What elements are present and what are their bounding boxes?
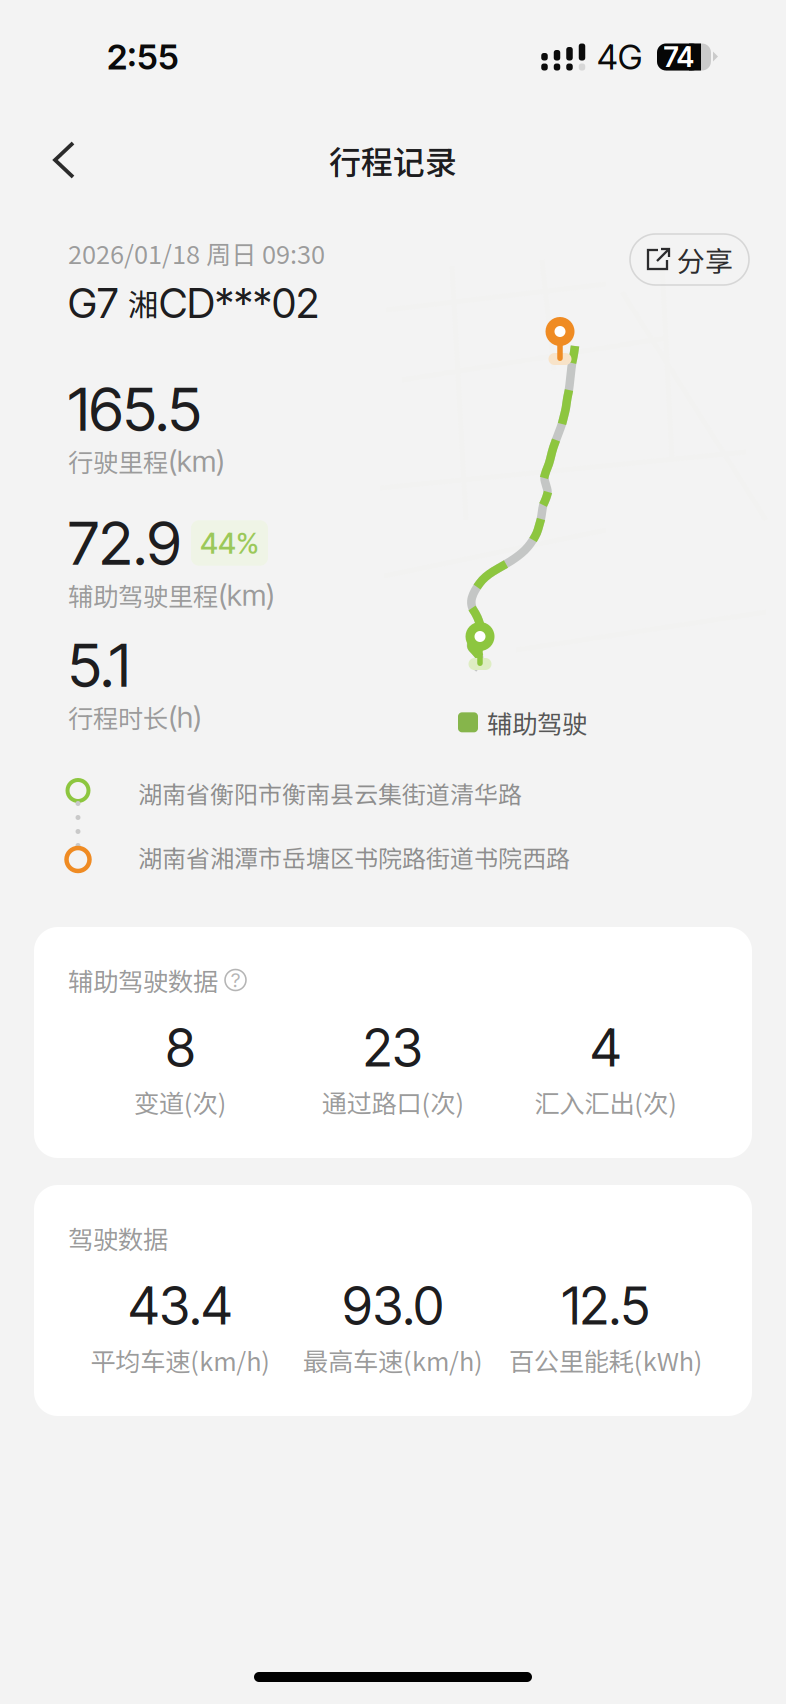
staticText: (km)	[168, 443, 225, 479]
staticText: (km)	[218, 577, 275, 613]
staticText: 辅助驾驶	[487, 704, 587, 741]
staticText: 汇入汇出(次)	[534, 1084, 677, 1120]
staticText: 湖南省衡阳市衡南县云集街道清华路	[138, 776, 522, 810]
staticText: 变道(次)	[134, 1084, 227, 1120]
staticText: 驾驶数据	[68, 1220, 168, 1256]
staticText: 44%	[200, 525, 259, 561]
staticText: 43.4	[128, 1274, 232, 1337]
staticText: 8	[166, 1016, 195, 1079]
staticText: 72.9	[68, 507, 181, 579]
staticText: 行驶里程	[68, 443, 168, 479]
staticText: 最高车速(km/h)	[303, 1342, 483, 1378]
staticText: 165.5	[68, 373, 201, 445]
staticText: 4	[590, 1016, 621, 1079]
staticText: 23	[363, 1016, 423, 1079]
staticText: 百公里能耗(kWh)	[509, 1342, 703, 1378]
staticText: 2:55	[107, 36, 179, 78]
staticText: 辅助驾驶里程	[68, 577, 218, 613]
button[interactable]: 分享	[630, 234, 749, 285]
staticText: 通过路口(次)	[321, 1084, 464, 1120]
staticText: 行程记录	[329, 137, 457, 183]
staticText: G7	[68, 278, 128, 328]
staticText: 74	[663, 40, 694, 74]
staticText: 湖南省湘潭市岳塘区书院路街道书院西路	[138, 840, 570, 874]
button[interactable]: 返回	[36, 127, 92, 193]
staticText: 湘	[128, 281, 159, 325]
staticText: 93.0	[342, 1274, 443, 1337]
staticText: 2026/01/18 周日 09:30	[68, 235, 325, 271]
staticText: 5.1	[68, 629, 130, 701]
staticText: 辅助驾驶数据	[68, 962, 218, 998]
staticText: CD***02	[159, 278, 319, 328]
staticText: 12.5	[562, 1274, 650, 1337]
staticText: (h)	[168, 699, 202, 735]
staticText: 行程时长	[68, 699, 168, 735]
staticText: ?	[231, 968, 240, 992]
staticText: 平均车速(km/h)	[90, 1342, 270, 1378]
staticText: 4G	[597, 36, 642, 78]
staticText: 分享	[677, 239, 733, 280]
